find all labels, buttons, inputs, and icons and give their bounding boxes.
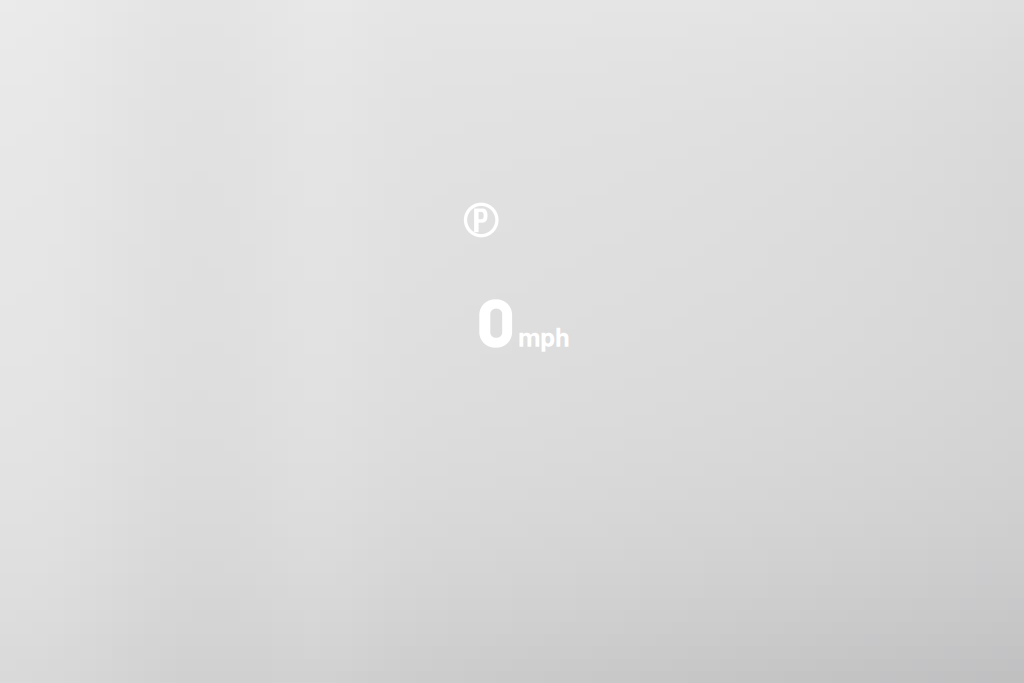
staticText: mph [518,320,570,352]
